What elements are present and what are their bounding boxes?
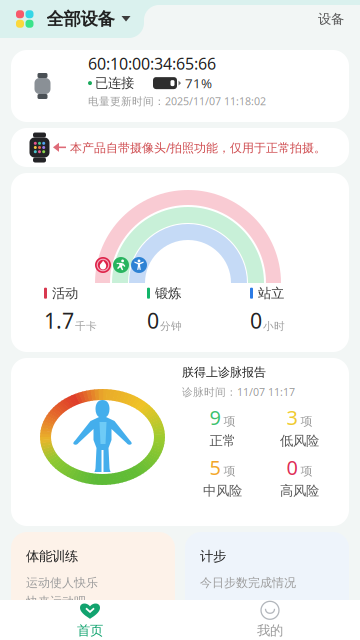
staticText: 项: [223, 464, 235, 478]
staticText: 锻炼: [155, 285, 181, 301]
staticText: 60:10:00:34:65:66: [88, 53, 216, 74]
staticText: 1.7: [44, 306, 74, 335]
staticText: 千卡: [75, 320, 97, 333]
staticText: 首页: [77, 622, 103, 639]
staticText: 0: [250, 306, 262, 335]
staticText: 站立: [258, 285, 284, 301]
staticText: 中风险: [203, 482, 242, 499]
staticText: 分钟: [160, 320, 182, 333]
staticText: 高风险: [280, 482, 319, 499]
staticText: 3: [286, 404, 297, 431]
staticText: 快来运动吧: [26, 594, 86, 609]
staticText: 0: [147, 306, 159, 335]
staticText: 体能训练: [26, 548, 78, 564]
button[interactable]: 首页: [0, 600, 180, 640]
staticText: 本产品自带摄像头/拍照功能，仅用于正常拍摄。: [70, 139, 326, 155]
staticText: 计步: [200, 548, 226, 564]
button[interactable]: 全部设备: [0, 0, 146, 38]
staticText: 电量更新时间：2025/11/07 11:18:02: [88, 94, 266, 108]
staticText: 我的: [257, 622, 283, 639]
button[interactable]: 计步: [185, 532, 349, 632]
staticText: 5: [209, 454, 220, 480]
staticText: 正常: [209, 433, 235, 449]
staticText: 小时: [263, 320, 285, 333]
staticText: 今日步数完成情况: [200, 575, 296, 590]
button[interactable]: 体能训练: [11, 532, 175, 632]
staticText: 活动: [52, 285, 78, 301]
staticText: 已连接: [95, 75, 134, 91]
staticText: 全部设备: [46, 8, 114, 30]
staticText: 71%: [185, 74, 212, 92]
staticText: 项: [300, 414, 312, 428]
staticText: 运动使人快乐: [26, 575, 98, 590]
staticText: 项: [300, 464, 312, 478]
staticText: 项: [223, 414, 235, 428]
staticText: 0: [286, 454, 297, 480]
button[interactable]: 设备: [318, 0, 360, 38]
staticText: 低风险: [280, 433, 319, 449]
staticText: 9: [209, 404, 220, 431]
staticText: 朕得上诊脉报告: [182, 365, 266, 380]
button[interactable]: 我的: [180, 600, 360, 640]
staticText: 设备: [318, 11, 344, 27]
staticText: 诊脉时间：11/07 11:17: [182, 385, 295, 399]
